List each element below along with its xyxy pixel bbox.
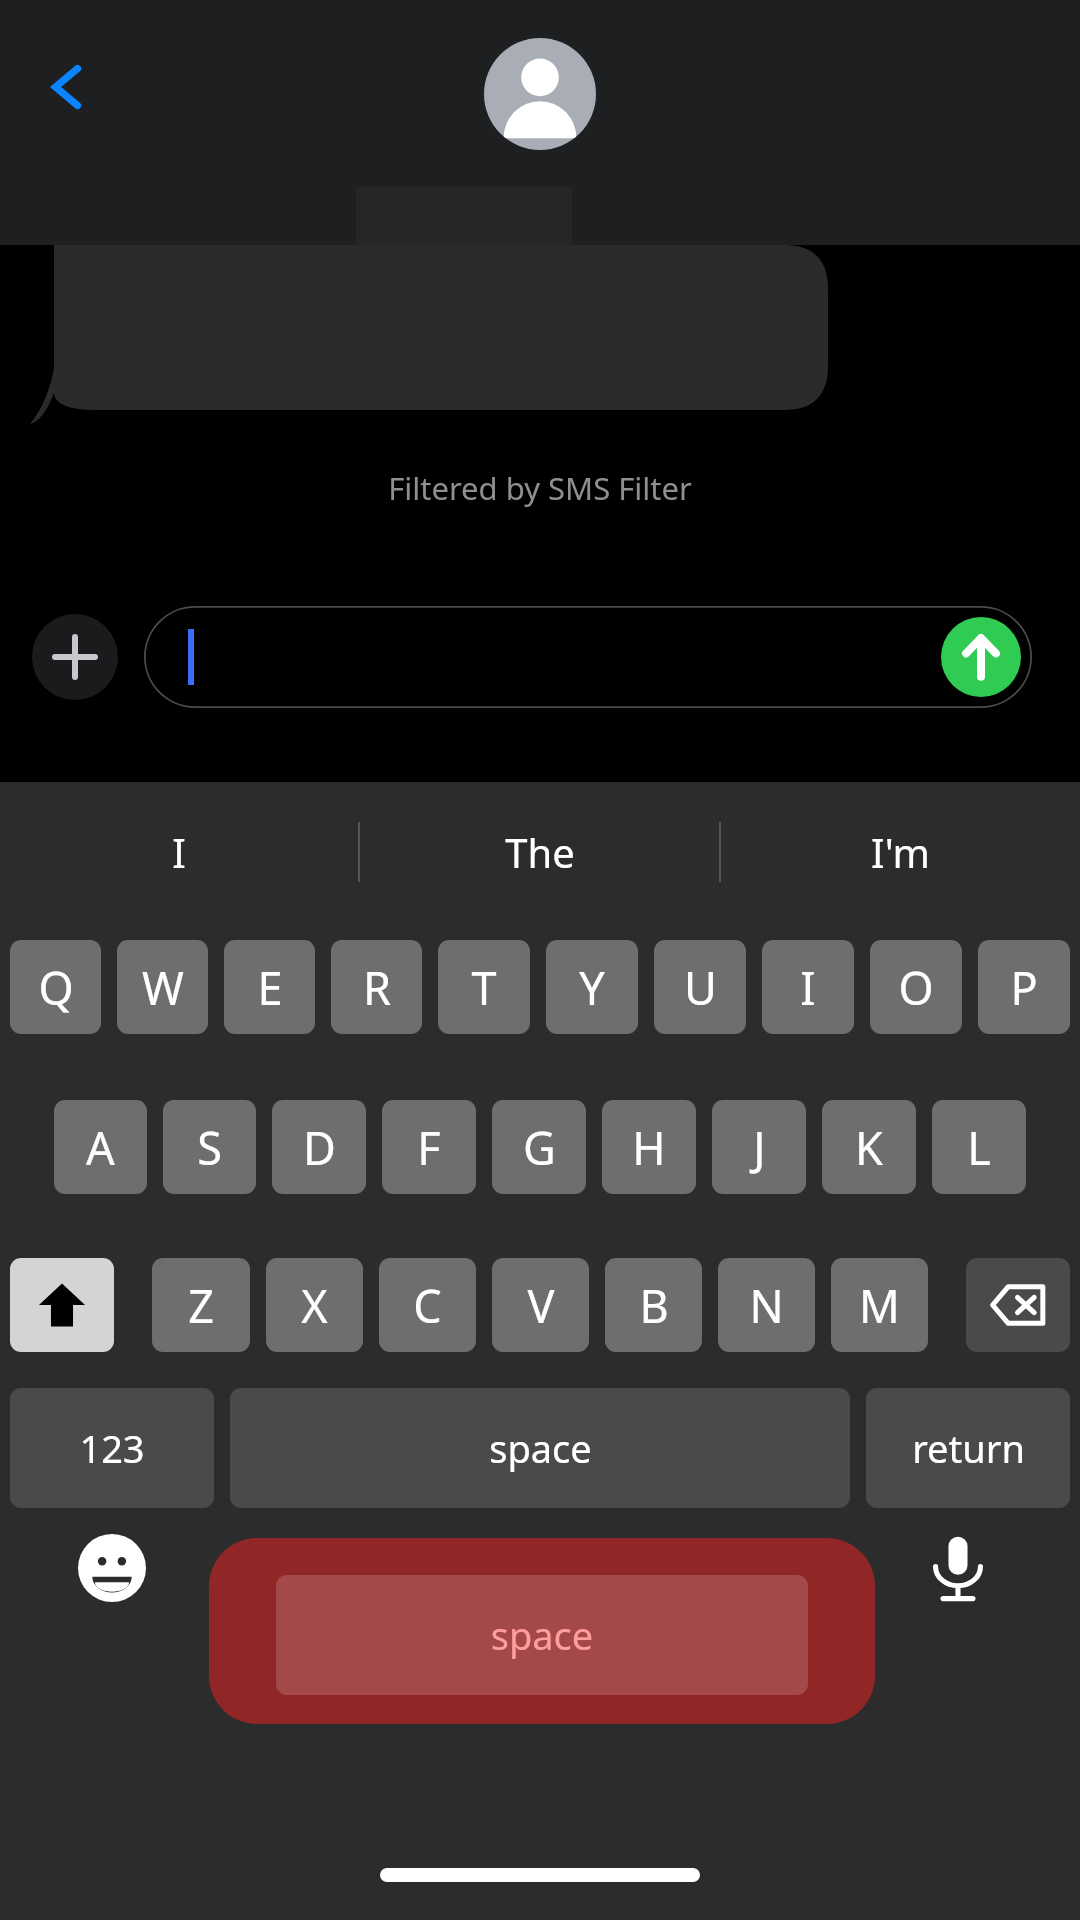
staticText: V bbox=[527, 1275, 555, 1336]
staticText: S bbox=[197, 1117, 222, 1178]
staticText: Filtered by SMS Filter bbox=[388, 467, 692, 509]
button[interactable]: V bbox=[492, 1258, 589, 1352]
button[interactable]: Back bbox=[28, 48, 106, 126]
button[interactable]: G bbox=[492, 1100, 586, 1194]
button[interactable]: Y bbox=[546, 940, 638, 1034]
staticText: G bbox=[523, 1117, 556, 1178]
button[interactable]: X bbox=[266, 1258, 363, 1352]
button[interactable]: Q bbox=[10, 940, 101, 1034]
button[interactable]: F bbox=[382, 1100, 476, 1194]
button[interactable]: O bbox=[870, 940, 962, 1034]
button[interactable]: U bbox=[654, 940, 746, 1034]
button[interactable]: space bbox=[230, 1388, 850, 1508]
staticText: 123 bbox=[79, 1422, 145, 1474]
button[interactable]: I'm bbox=[721, 782, 1080, 922]
staticText: F bbox=[417, 1117, 441, 1178]
staticText: B bbox=[639, 1275, 669, 1336]
button[interactable]: Add bbox=[32, 614, 118, 700]
staticText: K bbox=[855, 1117, 883, 1178]
staticText: C bbox=[413, 1275, 442, 1336]
staticText: N bbox=[749, 1275, 784, 1336]
staticText: return bbox=[912, 1422, 1025, 1474]
button[interactable]: B bbox=[605, 1258, 702, 1352]
staticText: J bbox=[753, 1117, 766, 1178]
staticText: X bbox=[301, 1275, 328, 1336]
staticText: O bbox=[898, 957, 934, 1018]
staticText: Y bbox=[579, 957, 605, 1018]
staticText: Z bbox=[188, 1275, 214, 1336]
staticText: I'm bbox=[871, 825, 930, 879]
button[interactable]: I bbox=[762, 940, 854, 1034]
staticText: I bbox=[172, 825, 186, 879]
staticText: space bbox=[276, 1609, 808, 1661]
button[interactable]: S bbox=[163, 1100, 256, 1194]
button[interactable]: K bbox=[822, 1100, 916, 1194]
staticText: E bbox=[257, 957, 283, 1018]
button[interactable]: Send bbox=[941, 617, 1021, 697]
button[interactable]: M bbox=[831, 1258, 928, 1352]
button[interactable]: Shift bbox=[10, 1258, 114, 1352]
staticText: Q bbox=[38, 957, 74, 1018]
button[interactable]: Z bbox=[152, 1258, 250, 1352]
button[interactable]: Send bbox=[144, 606, 1032, 708]
staticText: D bbox=[303, 1117, 336, 1178]
staticText: P bbox=[1010, 957, 1038, 1018]
button[interactable]: Dictation bbox=[924, 1534, 992, 1602]
staticText: R bbox=[363, 957, 391, 1018]
staticText: W bbox=[142, 957, 184, 1018]
staticText: space bbox=[489, 1422, 592, 1474]
button[interactable]: Contact avatar bbox=[484, 38, 596, 150]
button[interactable]: W bbox=[117, 940, 208, 1034]
button[interactable]: J bbox=[712, 1100, 806, 1194]
staticText: T bbox=[471, 957, 497, 1018]
button[interactable]: C bbox=[379, 1258, 476, 1352]
button[interactable]: I bbox=[0, 782, 358, 922]
button[interactable]: Backspace bbox=[966, 1258, 1070, 1352]
button[interactable]: H bbox=[602, 1100, 696, 1194]
button[interactable]: R bbox=[331, 940, 422, 1034]
staticText: A bbox=[86, 1117, 115, 1178]
button[interactable]: Emoji bbox=[78, 1534, 146, 1602]
staticText: U bbox=[684, 957, 717, 1018]
button[interactable]: L bbox=[932, 1100, 1026, 1194]
button[interactable]: return bbox=[866, 1388, 1070, 1508]
button[interactable]: A bbox=[54, 1100, 147, 1194]
button[interactable]: D bbox=[272, 1100, 366, 1194]
button[interactable]: T bbox=[438, 940, 530, 1034]
staticText: I bbox=[800, 957, 816, 1018]
staticText: M bbox=[859, 1275, 900, 1336]
button[interactable]: E bbox=[224, 940, 315, 1034]
button[interactable]: N bbox=[718, 1258, 815, 1352]
button[interactable]: 123 bbox=[10, 1388, 214, 1508]
staticText: L bbox=[967, 1117, 991, 1178]
staticText: The bbox=[505, 825, 575, 879]
staticText: H bbox=[632, 1117, 666, 1178]
button[interactable]: P bbox=[978, 940, 1070, 1034]
button[interactable]: The bbox=[360, 782, 719, 922]
